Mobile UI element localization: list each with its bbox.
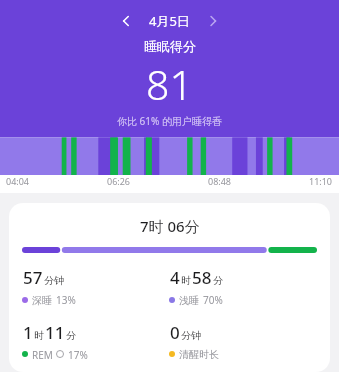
staticText: 57 <box>23 266 43 289</box>
staticText: 1 <box>23 321 33 344</box>
staticText: 清醒时长 <box>179 348 219 359</box>
staticText: 11 <box>45 321 65 344</box>
button[interactable]: 1 <box>22 321 169 359</box>
staticText: 深睡 <box>32 294 52 307</box>
staticText: 时 <box>34 329 44 342</box>
staticText: 0 <box>170 321 180 344</box>
staticText: 04:04 <box>6 175 30 187</box>
staticText: 浅睡 <box>179 294 199 307</box>
button[interactable]: Previous day <box>113 8 139 34</box>
staticText: 17% <box>68 348 88 359</box>
button[interactable]: 57 <box>22 266 169 307</box>
staticText: 08:48 <box>208 175 232 187</box>
button[interactable]: 0 <box>169 321 317 359</box>
button[interactable]: 7时 06分 <box>9 203 330 372</box>
staticText: 你比 61% 的用户睡得香 <box>117 114 222 128</box>
staticText: 分 <box>213 274 223 287</box>
staticText: 70% <box>203 293 223 307</box>
staticText: 11:10 <box>309 175 333 187</box>
staticText: 分钟 <box>44 274 64 287</box>
staticText: 13% <box>56 293 76 307</box>
staticText: 睡眠得分 <box>144 38 196 54</box>
staticText: REM <box>32 348 53 359</box>
staticText: 分钟 <box>181 329 201 342</box>
staticText: 81 <box>146 56 193 112</box>
staticText: 06:26 <box>107 175 131 187</box>
staticText: 4月5日 <box>149 12 190 30</box>
staticText: 时 <box>181 274 191 287</box>
staticText: 58 <box>192 266 212 289</box>
button[interactable]: 4 <box>169 266 317 307</box>
button[interactable]: Next day <box>200 8 226 34</box>
staticText: 分 <box>66 329 76 342</box>
staticText: 4 <box>170 266 180 289</box>
staticText: 7时 06分 <box>140 216 200 236</box>
